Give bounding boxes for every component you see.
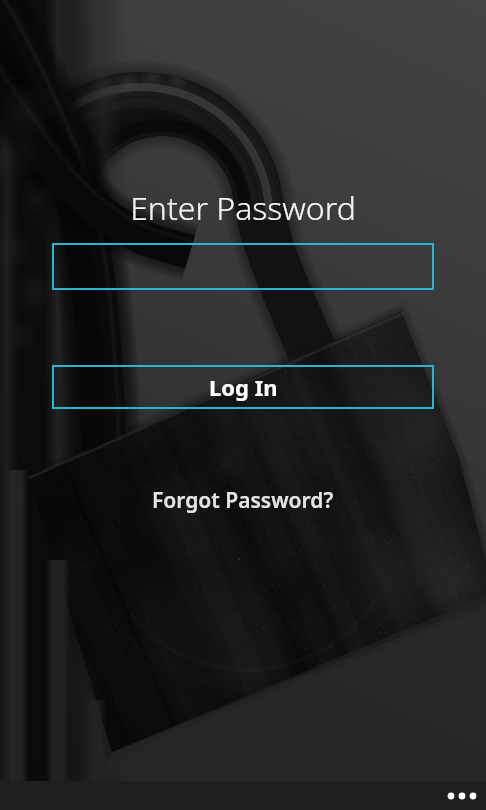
staticText: Log In <box>209 372 278 402</box>
staticText: Enter Password <box>0 186 486 230</box>
button[interactable]: More options <box>430 781 486 810</box>
button[interactable] <box>52 243 434 290</box>
button[interactable]: Forgot Password? <box>152 486 334 515</box>
button[interactable]: Log In <box>52 365 434 409</box>
